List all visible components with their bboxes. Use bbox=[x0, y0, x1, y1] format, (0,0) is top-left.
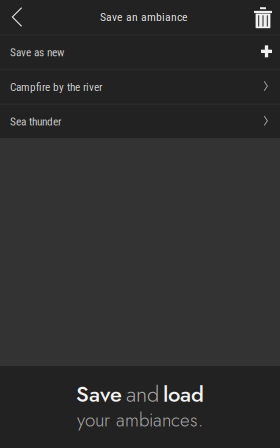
staticText: Sea thunder bbox=[10, 115, 61, 128]
staticText: and bbox=[126, 378, 159, 410]
staticText: Save bbox=[76, 378, 122, 410]
button[interactable]: Save as new bbox=[0, 34, 280, 69]
button[interactable]: Back bbox=[5, 0, 29, 34]
button[interactable]: Delete ambiance bbox=[250, 0, 276, 36]
button[interactable]: Campfire by the river bbox=[0, 69, 280, 103]
staticText: load bbox=[163, 378, 204, 410]
staticText: your ambiances. bbox=[77, 406, 203, 433]
staticText: Save an ambiance bbox=[100, 10, 188, 24]
staticText: Campfire by the river bbox=[10, 80, 102, 94]
button[interactable]: Sea thunder bbox=[0, 103, 280, 138]
staticText: Save as new bbox=[10, 46, 64, 59]
